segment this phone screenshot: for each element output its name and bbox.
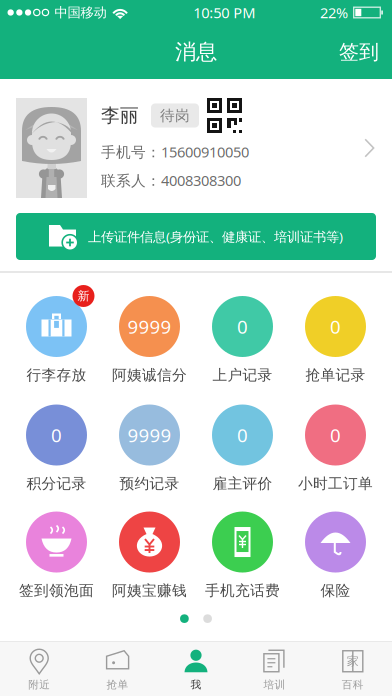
staticText: 附近 xyxy=(28,678,50,691)
button[interactable]: 我 xyxy=(157,642,235,696)
staticText: 预约记录 xyxy=(119,474,179,492)
staticText: 新 xyxy=(77,289,89,303)
button[interactable]: 签到领泡面 xyxy=(10,511,103,599)
staticText: 家 xyxy=(347,654,359,669)
button[interactable]: 0 xyxy=(196,296,289,384)
button[interactable]: 9999 xyxy=(103,296,196,384)
button[interactable]: 培训 xyxy=(235,642,314,696)
staticText: 抢单 xyxy=(107,678,129,691)
button[interactable]: 0 xyxy=(10,404,103,492)
staticText: 0 xyxy=(237,314,248,339)
staticText: 0 xyxy=(330,314,341,339)
staticText: 0 xyxy=(330,423,341,447)
button[interactable]: 抢单 xyxy=(78,642,157,696)
staticText: 10:50 PM xyxy=(193,3,255,22)
staticText: 阿姨诚信分 xyxy=(112,366,187,384)
staticText: 抢单记录 xyxy=(305,366,365,384)
staticText: 9999 xyxy=(127,314,171,339)
staticText: 保险 xyxy=(320,581,350,599)
staticText: 中国移动 xyxy=(55,4,107,21)
staticText: 李丽 xyxy=(101,104,139,127)
staticText: 培训 xyxy=(263,678,285,691)
staticText: 手机号：15600910050 xyxy=(101,142,249,161)
button[interactable]: 上传证件信息(身份证、健康证、培训证书等) xyxy=(16,213,376,260)
staticText: 消息 xyxy=(175,39,217,65)
staticText: 联系人：4008308300 xyxy=(101,170,241,190)
staticText: 0 xyxy=(237,423,248,447)
staticText: 22% xyxy=(320,3,348,22)
button[interactable]: 李丽 xyxy=(0,79,392,213)
button[interactable]: 家 xyxy=(314,642,392,696)
staticText: 上传证件信息(身份证、健康证、培训证书等) xyxy=(88,228,343,245)
staticText: 行李存放 xyxy=(26,366,86,384)
button[interactable]: 签到 xyxy=(321,25,392,79)
staticText: 待岗 xyxy=(160,106,190,124)
staticText: 9999 xyxy=(127,423,171,447)
button[interactable]: 0 xyxy=(289,296,382,384)
staticText: 签到 xyxy=(339,40,379,64)
button[interactable]: 手机充话费 xyxy=(196,511,289,599)
button[interactable]: 阿姨宝赚钱 xyxy=(103,511,196,599)
button[interactable]: 0 xyxy=(196,404,289,492)
button[interactable]: 9999 xyxy=(103,404,196,492)
staticText: 雇主评价 xyxy=(212,474,272,492)
staticText: 百科 xyxy=(342,678,364,691)
button[interactable]: 附近 xyxy=(0,642,78,696)
staticText: 积分记录 xyxy=(26,474,86,492)
staticText: 我 xyxy=(190,678,201,691)
staticText: 小时工订单 xyxy=(298,474,373,492)
button[interactable]: 0 xyxy=(289,404,382,492)
button[interactable]: 新 xyxy=(10,296,103,384)
staticText: 阿姨宝赚钱 xyxy=(112,581,187,599)
button[interactable]: 保险 xyxy=(289,511,382,599)
staticText: 上户记录 xyxy=(212,366,272,384)
staticText: 手机充话费 xyxy=(205,581,280,599)
staticText: 0 xyxy=(51,423,62,447)
staticText: 签到领泡面 xyxy=(19,581,94,599)
